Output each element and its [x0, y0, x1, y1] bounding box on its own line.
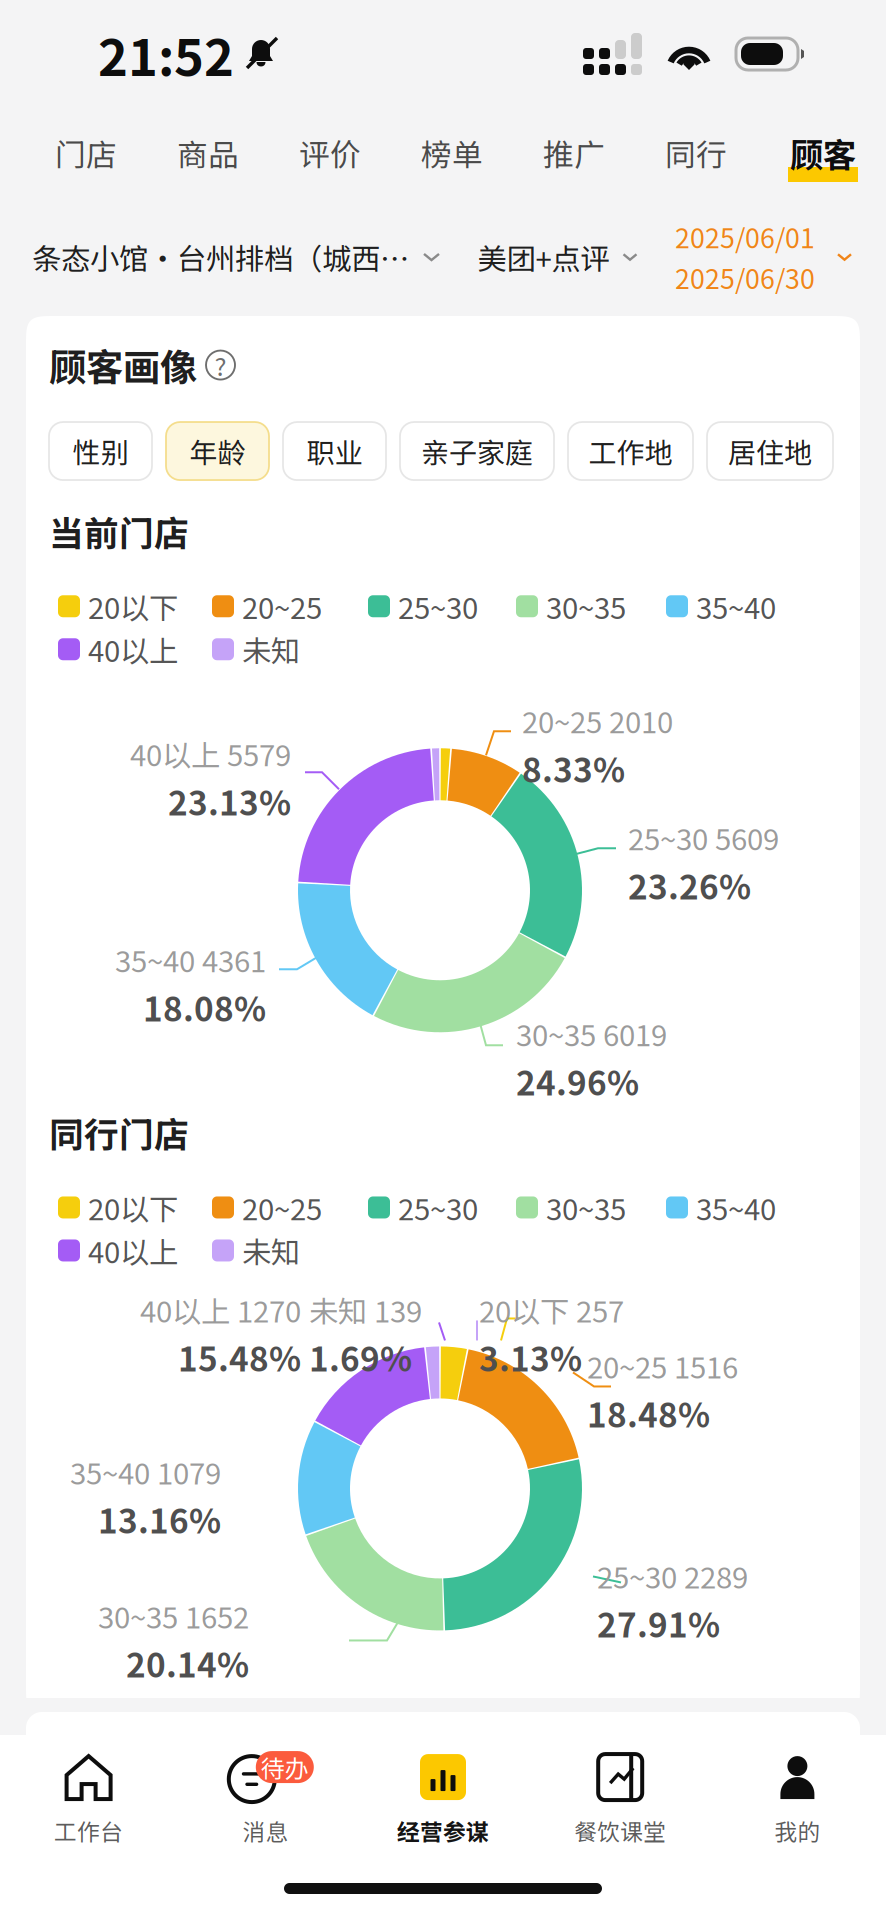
- staticText: 24.96%: [516, 1057, 639, 1105]
- button[interactable]: 工作台: [0, 1751, 177, 1847]
- staticText: 工作台: [54, 1814, 123, 1847]
- staticText: 18.48%: [587, 1389, 710, 1437]
- staticText: 15.48%: [178, 1333, 301, 1381]
- staticText: 25~30 5609: [628, 816, 779, 859]
- staticText: 推广: [543, 131, 605, 175]
- button[interactable]: 工作地: [568, 422, 693, 480]
- staticText: 30~35: [546, 1186, 626, 1229]
- staticText: 25~30: [398, 1186, 478, 1229]
- staticText: 2025/06/30: [675, 258, 815, 297]
- button[interactable]: 条态小馆·台州排档（城西…: [32, 236, 440, 278]
- staticText: 未知: [242, 1229, 300, 1272]
- staticText: 门店: [55, 131, 117, 175]
- staticText: 待办: [261, 1750, 309, 1784]
- staticText: 同行门店: [49, 1107, 189, 1157]
- staticText: 35~40 1079: [70, 1450, 221, 1493]
- button[interactable]: 推广: [543, 124, 605, 182]
- button[interactable]: 餐饮课堂: [532, 1751, 709, 1847]
- staticText: 40以上: [88, 1229, 178, 1272]
- staticText: 我的: [774, 1814, 820, 1847]
- staticText: 当前门店: [49, 506, 189, 556]
- staticText: 35~40 4361: [115, 938, 266, 981]
- staticText: 13.16%: [98, 1495, 221, 1543]
- staticText: ?: [214, 347, 226, 383]
- button[interactable]: 榜单: [421, 124, 483, 182]
- staticText: 35~40: [696, 585, 776, 627]
- staticText: 20~25 1516: [587, 1344, 738, 1387]
- staticText: 条态小馆·台州排档（城西…: [32, 236, 409, 278]
- staticText: 未知: [242, 628, 300, 670]
- button[interactable]: 门店: [55, 124, 117, 182]
- staticText: 消息: [243, 1814, 289, 1847]
- staticText: 23.26%: [628, 861, 751, 909]
- staticText: 20~25: [242, 1186, 322, 1229]
- button[interactable]: 顾客: [787, 124, 859, 182]
- staticText: 评价: [299, 131, 361, 175]
- button[interactable]: 评价: [299, 124, 361, 182]
- staticText: 亲子家庭: [421, 431, 533, 471]
- staticText: 餐饮课堂: [574, 1814, 666, 1847]
- button[interactable]: 同行: [665, 124, 727, 182]
- staticText: 20~25: [242, 585, 322, 627]
- button[interactable]: 商品: [177, 124, 239, 182]
- staticText: 同行: [665, 131, 727, 175]
- staticText: 1.69%: [309, 1333, 412, 1381]
- button[interactable]: 性别: [49, 422, 152, 480]
- staticText: 20以下: [88, 585, 178, 627]
- staticText: 23.13%: [168, 777, 291, 825]
- staticText: 35~40: [696, 1186, 776, 1229]
- staticText: 20~25 2010: [522, 699, 673, 742]
- staticText: 20以下 257: [479, 1288, 624, 1331]
- staticText: 3.13%: [479, 1333, 582, 1381]
- staticText: 21:52: [98, 17, 234, 91]
- button[interactable]: 2025/06/01: [675, 217, 852, 297]
- button[interactable]: 经营参谋: [354, 1751, 532, 1847]
- staticText: 性别: [72, 431, 128, 471]
- button[interactable]: 待办: [177, 1751, 354, 1847]
- button[interactable]: 亲子家庭: [400, 422, 554, 480]
- staticText: 8.33%: [522, 744, 625, 792]
- button[interactable]: 我的: [709, 1751, 886, 1847]
- staticText: 25~30: [398, 585, 478, 627]
- staticText: 18.08%: [143, 983, 266, 1031]
- staticText: 30~35 1652: [98, 1594, 249, 1637]
- staticText: 40以上 1270: [140, 1288, 301, 1331]
- staticText: 25~30 2289: [597, 1554, 748, 1597]
- staticText: 顾客: [790, 129, 856, 177]
- staticText: 经营参谋: [397, 1814, 489, 1847]
- staticText: 顾客画像: [49, 338, 197, 392]
- staticText: 未知 139: [309, 1288, 422, 1331]
- button[interactable]: 职业: [283, 422, 386, 480]
- staticText: 年龄: [189, 431, 245, 471]
- button[interactable]: 美团+点评: [477, 236, 637, 278]
- staticText: 20.14%: [126, 1639, 249, 1687]
- staticText: 20以下: [88, 1186, 178, 1229]
- staticText: 27.91%: [597, 1599, 720, 1647]
- button[interactable]: 年龄: [166, 422, 269, 480]
- staticText: 居住地: [728, 431, 812, 471]
- staticText: 榜单: [421, 131, 483, 175]
- staticText: 30~35 6019: [516, 1012, 667, 1055]
- staticText: 40以上 5579: [130, 732, 291, 775]
- staticText: 商品: [177, 131, 239, 175]
- staticText: 美团+点评: [477, 236, 609, 278]
- staticText: 30~35: [546, 585, 626, 627]
- staticText: 2025/06/01: [675, 217, 815, 256]
- staticText: 职业: [306, 431, 362, 471]
- staticText: 40以上: [88, 628, 178, 670]
- staticText: 工作地: [588, 431, 672, 471]
- button[interactable]: 居住地: [707, 422, 833, 480]
